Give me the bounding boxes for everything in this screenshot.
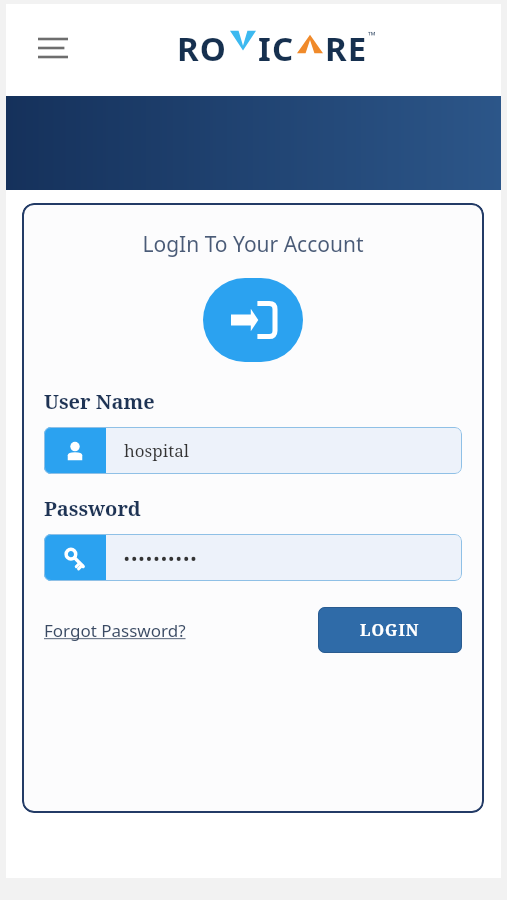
staticText: User Name bbox=[44, 388, 155, 415]
button[interactable]: •••••••••• bbox=[44, 534, 462, 581]
button[interactable]: Menu bbox=[36, 31, 70, 65]
button[interactable]: Login bbox=[203, 278, 303, 362]
staticText: Forgot Password? bbox=[44, 619, 186, 642]
staticText: Password bbox=[44, 495, 141, 522]
staticText: ™ bbox=[368, 28, 376, 42]
staticText: hospital bbox=[124, 439, 189, 462]
staticText: LOGIN bbox=[360, 619, 420, 641]
staticText: RO bbox=[177, 26, 228, 71]
staticText: IC bbox=[258, 26, 295, 71]
staticText: •••••••••• bbox=[124, 548, 199, 568]
staticText: RE bbox=[325, 26, 368, 71]
button[interactable]: hospital bbox=[44, 427, 462, 474]
button[interactable]: LOGIN bbox=[318, 607, 462, 653]
button[interactable]: Forgot Password? bbox=[44, 619, 186, 642]
staticText: LogIn To Your Account bbox=[44, 230, 462, 259]
